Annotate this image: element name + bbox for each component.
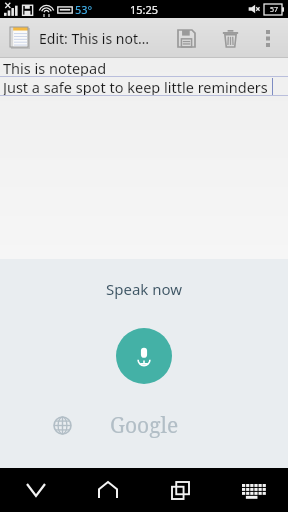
button[interactable]: Save xyxy=(164,18,208,58)
staticText: 53° xyxy=(75,2,93,17)
staticText: Just a safe spot to keep little reminder… xyxy=(3,77,268,96)
staticText: Edit: This is not… xyxy=(39,29,150,48)
button[interactable]: Back xyxy=(0,468,72,512)
staticText: This is notepad xyxy=(3,58,107,77)
button[interactable]: Delete xyxy=(208,18,252,58)
staticText: 15:25 xyxy=(130,2,159,17)
staticText: Google xyxy=(110,411,179,440)
button[interactable]: Keyboard xyxy=(216,468,288,512)
staticText: Speak now xyxy=(106,279,183,299)
button[interactable]: Home xyxy=(72,468,144,512)
button[interactable]: Language xyxy=(48,411,76,439)
button[interactable]: More options xyxy=(252,18,284,58)
button[interactable]: Microphone xyxy=(116,328,172,384)
staticText: 57 xyxy=(270,5,279,15)
button[interactable]: Edit: This is not… xyxy=(10,18,164,58)
button[interactable]: Recent apps xyxy=(144,468,216,512)
